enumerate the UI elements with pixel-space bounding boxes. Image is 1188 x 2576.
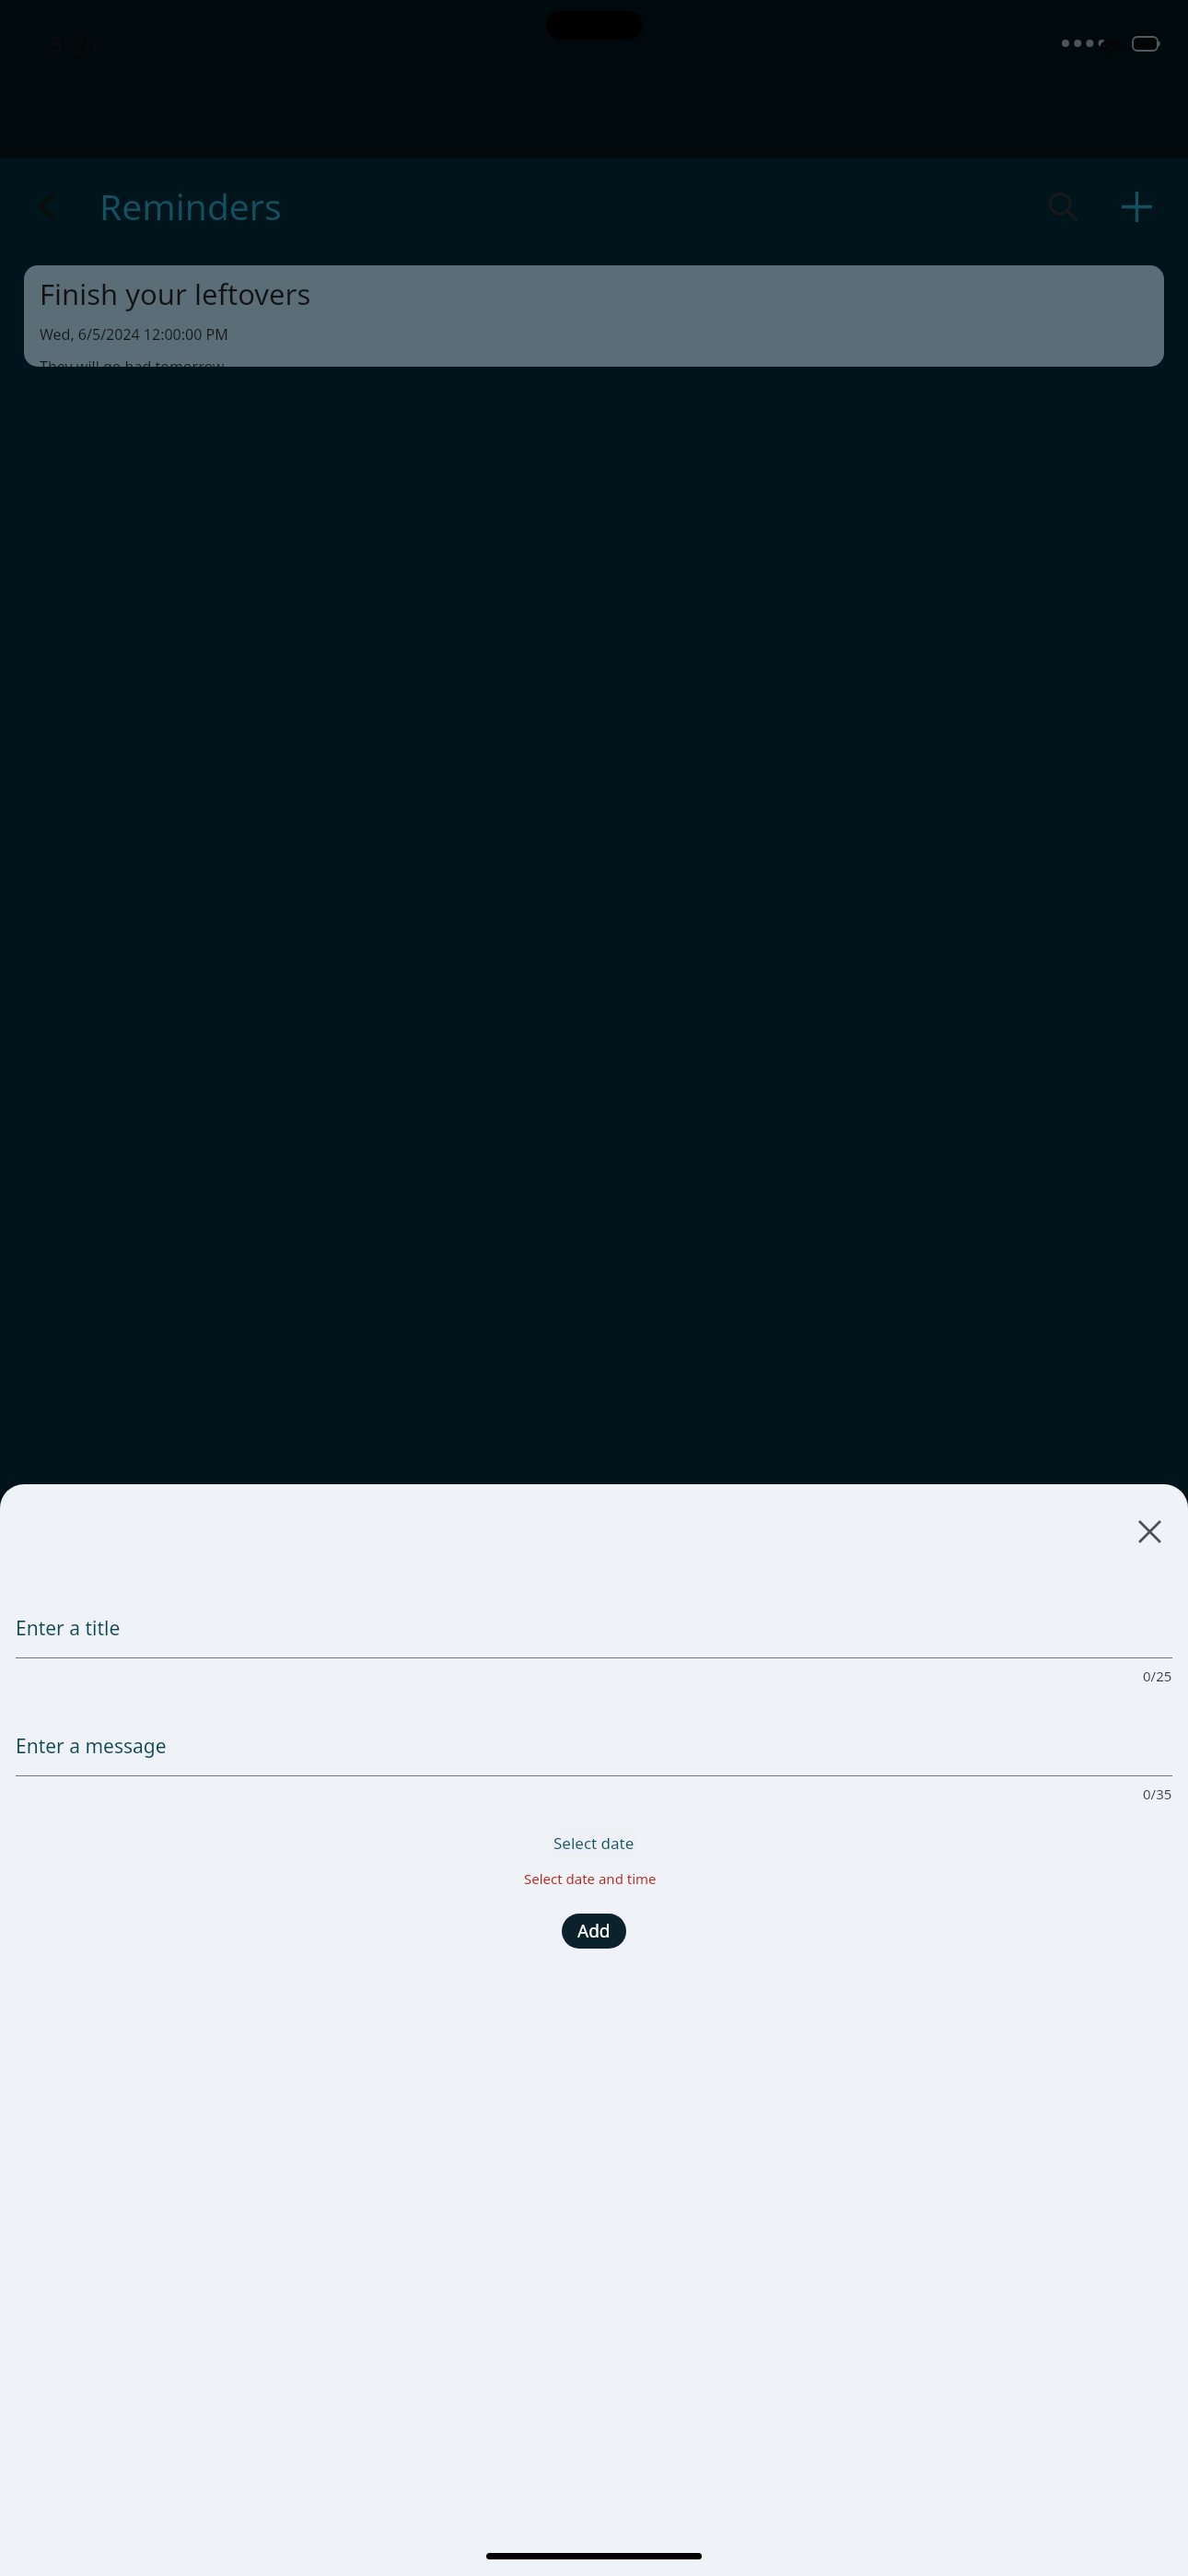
staticText: Finish your leftovers	[40, 275, 311, 313]
button[interactable]: Select date	[551, 1827, 637, 1859]
button[interactable]: Search	[1031, 175, 1094, 238]
staticText: 0/25	[1143, 1667, 1172, 1685]
staticText: Wed, 6/5/2024 12:00:00 PM	[40, 324, 228, 345]
button[interactable]: Finish your leftovers	[24, 265, 1164, 367]
button[interactable]: Add	[562, 1914, 626, 1949]
staticText: Enter a title	[16, 1615, 121, 1642]
staticText: Select date	[553, 1832, 635, 1854]
staticText: 0/35	[1143, 1785, 1172, 1803]
staticText: 3:20	[49, 27, 99, 61]
staticText: Reminders	[99, 181, 282, 230]
staticText: They will go bad tomorrow	[40, 357, 225, 367]
staticText: Enter a message	[16, 1733, 167, 1760]
button[interactable]: Close	[1124, 1505, 1175, 1557]
staticText: Select date and time	[524, 1869, 657, 1888]
button[interactable]: Add reminder	[1105, 175, 1168, 238]
staticText: Add	[577, 1919, 611, 1943]
